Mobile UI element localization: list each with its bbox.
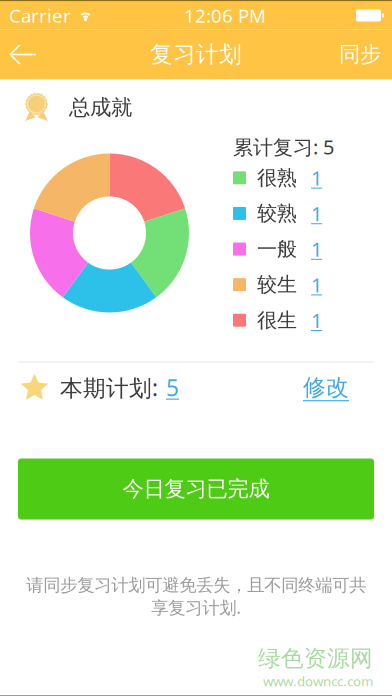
staticText: 5 bbox=[166, 372, 179, 402]
staticText: 1 bbox=[311, 307, 322, 334]
staticText: 本期计划: bbox=[60, 372, 158, 402]
button[interactable]: 5 bbox=[158, 369, 179, 405]
staticText: 较生 bbox=[257, 272, 297, 297]
button[interactable]: 1 bbox=[297, 305, 322, 335]
staticText: 很熟 bbox=[257, 166, 297, 190]
button[interactable]: 1 bbox=[297, 270, 322, 300]
button[interactable]: 同步 bbox=[339, 29, 392, 79]
staticText: 一般 bbox=[257, 237, 297, 261]
staticText: 总成就 bbox=[69, 94, 132, 121]
staticText: 同步 bbox=[339, 41, 381, 68]
button[interactable]: 修改 bbox=[303, 369, 392, 405]
staticText: 1 bbox=[311, 200, 322, 227]
button[interactable]: 返回 bbox=[0, 29, 46, 79]
button[interactable]: 今日复习已完成 bbox=[18, 458, 374, 519]
staticText: Carrier bbox=[9, 3, 71, 28]
staticText: 累计复习: 5 bbox=[233, 133, 334, 160]
staticText: 请同步复习计划可避免丢失，且不同终端可共享复习计划. bbox=[26, 574, 366, 619]
staticText: 今日复习已完成 bbox=[122, 476, 269, 502]
staticText: 1 bbox=[311, 165, 322, 191]
staticText: 修改 bbox=[303, 374, 349, 401]
staticText: 很生 bbox=[257, 308, 297, 333]
button[interactable]: 1 bbox=[297, 234, 322, 264]
staticText: 12:06 PM bbox=[184, 3, 266, 28]
staticText: 复习计划 bbox=[150, 41, 242, 68]
staticText: 1 bbox=[311, 236, 322, 262]
staticText: 1 bbox=[311, 271, 322, 298]
button[interactable]: 1 bbox=[297, 163, 322, 193]
staticText: www.downcc.com bbox=[263, 672, 373, 690]
staticText: 较熟 bbox=[257, 201, 297, 226]
button[interactable]: 1 bbox=[297, 198, 322, 228]
staticText: 绿色资源网 bbox=[258, 644, 373, 672]
